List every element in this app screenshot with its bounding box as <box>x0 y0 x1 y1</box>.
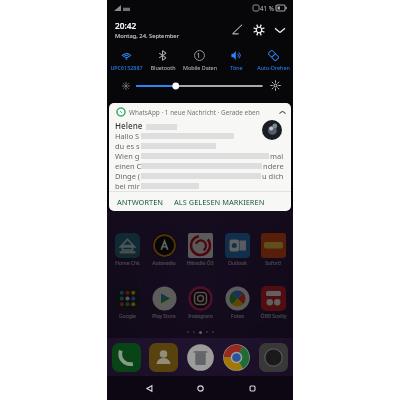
staticText: Helene <box>115 120 143 131</box>
staticText: mal <box>270 151 284 161</box>
button[interactable]: App <box>186 343 215 372</box>
button[interactable]: Home <box>190 378 210 398</box>
button[interactable]: Fotos <box>220 286 254 320</box>
button[interactable]: Hitradio Ö3 <box>183 233 217 267</box>
staticText: Auto-Drehen <box>257 64 290 71</box>
staticText: 20:42 <box>115 20 137 31</box>
button[interactable]: Back <box>139 378 159 398</box>
staticText: ndere <box>263 161 284 171</box>
button[interactable]: App <box>222 343 251 372</box>
staticText: Dinge ( <box>115 171 141 181</box>
button[interactable]: Google <box>110 286 144 320</box>
button[interactable]: Bluetooth <box>144 43 181 73</box>
staticText: Wien g <box>115 151 140 161</box>
staticText: UPC6152887 <box>110 64 143 71</box>
staticText: WhatsApp · 1 neue Nachricht · Gerade ebe… <box>129 108 260 117</box>
staticText: Fotos <box>231 313 244 320</box>
button[interactable]: Collapse <box>271 21 288 38</box>
staticText: du es s <box>115 141 140 151</box>
staticText: Hallo S <box>115 131 140 141</box>
button[interactable]: App <box>112 343 141 372</box>
button[interactable]: Mobile Daten <box>181 43 218 73</box>
staticText: 41 % <box>260 4 274 12</box>
button[interactable]: Töne <box>218 43 255 73</box>
staticText: Play Store <box>152 313 176 320</box>
button[interactable]: App <box>149 343 178 372</box>
button[interactable]: App <box>259 343 288 372</box>
staticText: u dich <box>262 171 284 181</box>
button[interactable]: ANTWORTEN <box>116 193 165 211</box>
staticText: ALS GELESEN MARKIEREN <box>174 197 265 207</box>
staticText: Instagram <box>188 313 213 320</box>
button[interactable]: Sofort! <box>256 233 290 267</box>
button[interactable]: Settings <box>250 21 267 38</box>
button[interactable]: Outlook <box>220 233 254 267</box>
staticText: ÖBB Scotty <box>260 313 287 320</box>
button[interactable]: ÖBB Scotty <box>256 286 290 320</box>
button[interactable]: UPC6152887 <box>108 43 144 73</box>
button[interactable]: WhatsApp · 1 neue Nachricht · Gerade ebe… <box>109 103 291 211</box>
staticText: Facebook <box>116 3 139 10</box>
button[interactable]: Autoradio <box>147 233 181 267</box>
staticText: Hitradio Ö3 <box>186 260 214 267</box>
staticText: Autoradio <box>152 260 176 267</box>
staticText: Google <box>119 313 136 320</box>
staticText: Bluetooth <box>150 64 176 71</box>
staticText: Play Store <box>261 3 285 10</box>
button[interactable]: Edit <box>229 21 246 38</box>
button[interactable]: Recents <box>242 378 262 398</box>
staticText: Sofort! <box>265 260 281 267</box>
button[interactable]: Instagram <box>183 286 217 320</box>
staticText: Outlook <box>228 260 247 267</box>
staticText: Montag, 24. September <box>115 32 180 40</box>
button[interactable]: Auto-Drehen <box>255 43 292 73</box>
staticText: einen C <box>115 161 142 171</box>
staticText: Mobile Daten <box>183 64 217 71</box>
button[interactable]: Play Store <box>147 286 181 320</box>
staticText: ANTWORTEN <box>117 197 164 207</box>
staticText: Home Chk <box>115 260 140 267</box>
staticText: Töne <box>230 64 243 71</box>
button[interactable]: Home Chk <box>110 233 144 267</box>
staticText: bei mir <box>115 181 140 191</box>
button[interactable]: ALS GELESEN MARKIEREN <box>173 193 266 211</box>
